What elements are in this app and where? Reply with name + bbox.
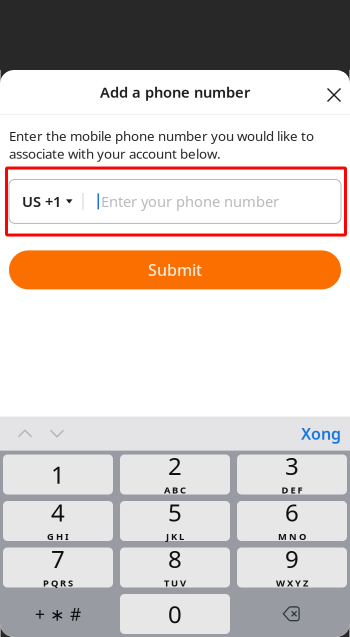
button[interactable]: 9	[237, 547, 347, 587]
button[interactable]: 4	[3, 501, 113, 541]
staticText: T U V	[164, 577, 186, 589]
staticText: 8	[168, 543, 182, 575]
staticText: 3	[285, 450, 299, 482]
staticText: W X Y Z	[276, 577, 308, 589]
staticText: J K L	[166, 530, 184, 543]
staticText: Enter the mobile phone number you would …	[9, 127, 314, 162]
staticText: 5	[168, 496, 182, 528]
button[interactable]: Previous field	[9, 418, 41, 448]
staticText: 6	[285, 496, 299, 528]
staticText: 9	[285, 543, 299, 575]
button[interactable]: 1	[3, 454, 113, 494]
button[interactable]: 5	[120, 501, 230, 541]
staticText: Add a phone number	[100, 82, 250, 102]
staticText: Xong	[301, 423, 341, 444]
button[interactable]: 8	[120, 547, 230, 587]
button[interactable]: 7	[3, 547, 113, 587]
button[interactable]: Xong	[296, 418, 346, 448]
staticText: 2	[168, 450, 182, 482]
staticText: P Q R S	[43, 577, 73, 589]
staticText: Submit	[148, 259, 202, 280]
button[interactable]: Close	[319, 72, 349, 112]
staticText: 0	[168, 598, 182, 630]
button[interactable]: Submit	[9, 250, 341, 289]
staticText: 4	[51, 496, 65, 528]
button[interactable]: US +1	[9, 181, 82, 222]
staticText: + ∗ #	[35, 602, 81, 625]
staticText: US +1	[22, 192, 61, 211]
button[interactable]: Next field	[41, 418, 73, 448]
button[interactable]: 6	[237, 501, 347, 541]
staticText: 7	[51, 543, 65, 575]
button[interactable]: Delete	[237, 594, 347, 634]
button[interactable]: 0	[120, 594, 230, 634]
staticText: Enter your phone number	[101, 192, 279, 211]
staticText: A B C	[164, 484, 186, 496]
button[interactable]: 3	[237, 454, 347, 494]
staticText: G H I	[47, 530, 69, 543]
staticText: D E F	[281, 484, 302, 496]
button[interactable]: 2	[120, 454, 230, 494]
staticText: M N O	[278, 530, 306, 543]
staticText: 1	[51, 459, 65, 490]
button[interactable]: + ∗ #	[3, 594, 113, 634]
